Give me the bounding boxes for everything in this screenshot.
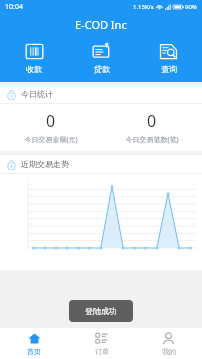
button[interactable]: 首页 xyxy=(0,328,68,359)
staticText: 近期交易走势 xyxy=(21,159,69,169)
staticText: 登陆成功 xyxy=(85,306,117,316)
staticText: 今日交易笔数(笔) xyxy=(125,135,179,145)
staticText: 0 xyxy=(147,110,157,132)
staticText: E-COD Inc xyxy=(75,17,127,32)
staticText: 1.15K/s xyxy=(133,3,154,11)
button[interactable]: 贷款 xyxy=(68,40,135,76)
button[interactable]: 0 xyxy=(0,110,101,145)
button[interactable]: 查询 xyxy=(135,40,202,76)
staticText: 今日交易金额(元) xyxy=(24,135,78,145)
staticText: 首页 xyxy=(27,347,41,356)
button[interactable]: 0 xyxy=(101,110,202,145)
staticText: 10:04 xyxy=(5,2,23,12)
staticText: 订单 xyxy=(95,347,109,356)
staticText: 今日统计 xyxy=(21,89,53,99)
button[interactable]: 订单 xyxy=(68,328,135,359)
staticText: 收款 xyxy=(26,64,42,74)
staticText: 90% xyxy=(185,3,197,11)
staticText: 我的 xyxy=(162,347,176,356)
staticText: 查询 xyxy=(161,64,177,74)
button[interactable]: 我的 xyxy=(135,328,202,359)
staticText: 0 xyxy=(46,110,56,132)
staticText: 贷款 xyxy=(94,64,110,74)
button[interactable]: 收款 xyxy=(0,40,68,76)
